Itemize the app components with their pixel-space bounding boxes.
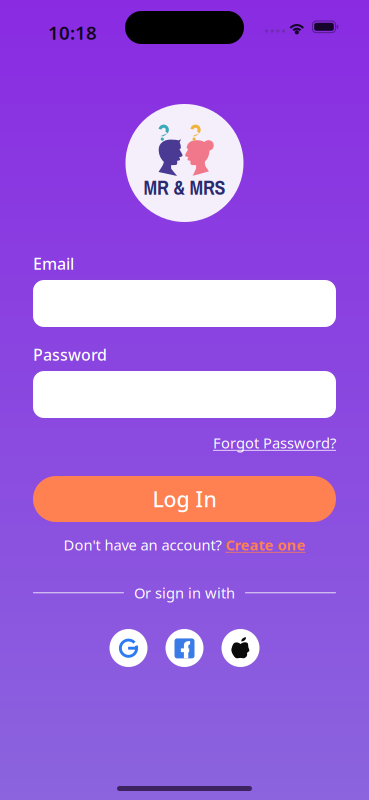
button[interactable]: Forgot Password? xyxy=(33,433,336,452)
button[interactable]: Create one xyxy=(225,535,305,554)
staticText: 10:18 xyxy=(48,20,97,45)
staticText: Password xyxy=(33,344,107,365)
staticText: Don't have an account? xyxy=(63,535,221,554)
button[interactable]: Sign in with Apple xyxy=(221,629,259,667)
button[interactable]: Log In xyxy=(33,476,336,522)
button[interactable]: Sign in with Google xyxy=(109,629,147,667)
staticText: Or sign in with xyxy=(134,583,235,602)
staticText: Email xyxy=(33,253,74,274)
staticText: Create one xyxy=(225,535,305,554)
staticText: MR & MRS xyxy=(143,174,226,201)
staticText: Log In xyxy=(152,485,216,513)
staticText: Forgot Password? xyxy=(213,433,336,452)
button[interactable]: Sign in with Facebook xyxy=(165,629,203,667)
